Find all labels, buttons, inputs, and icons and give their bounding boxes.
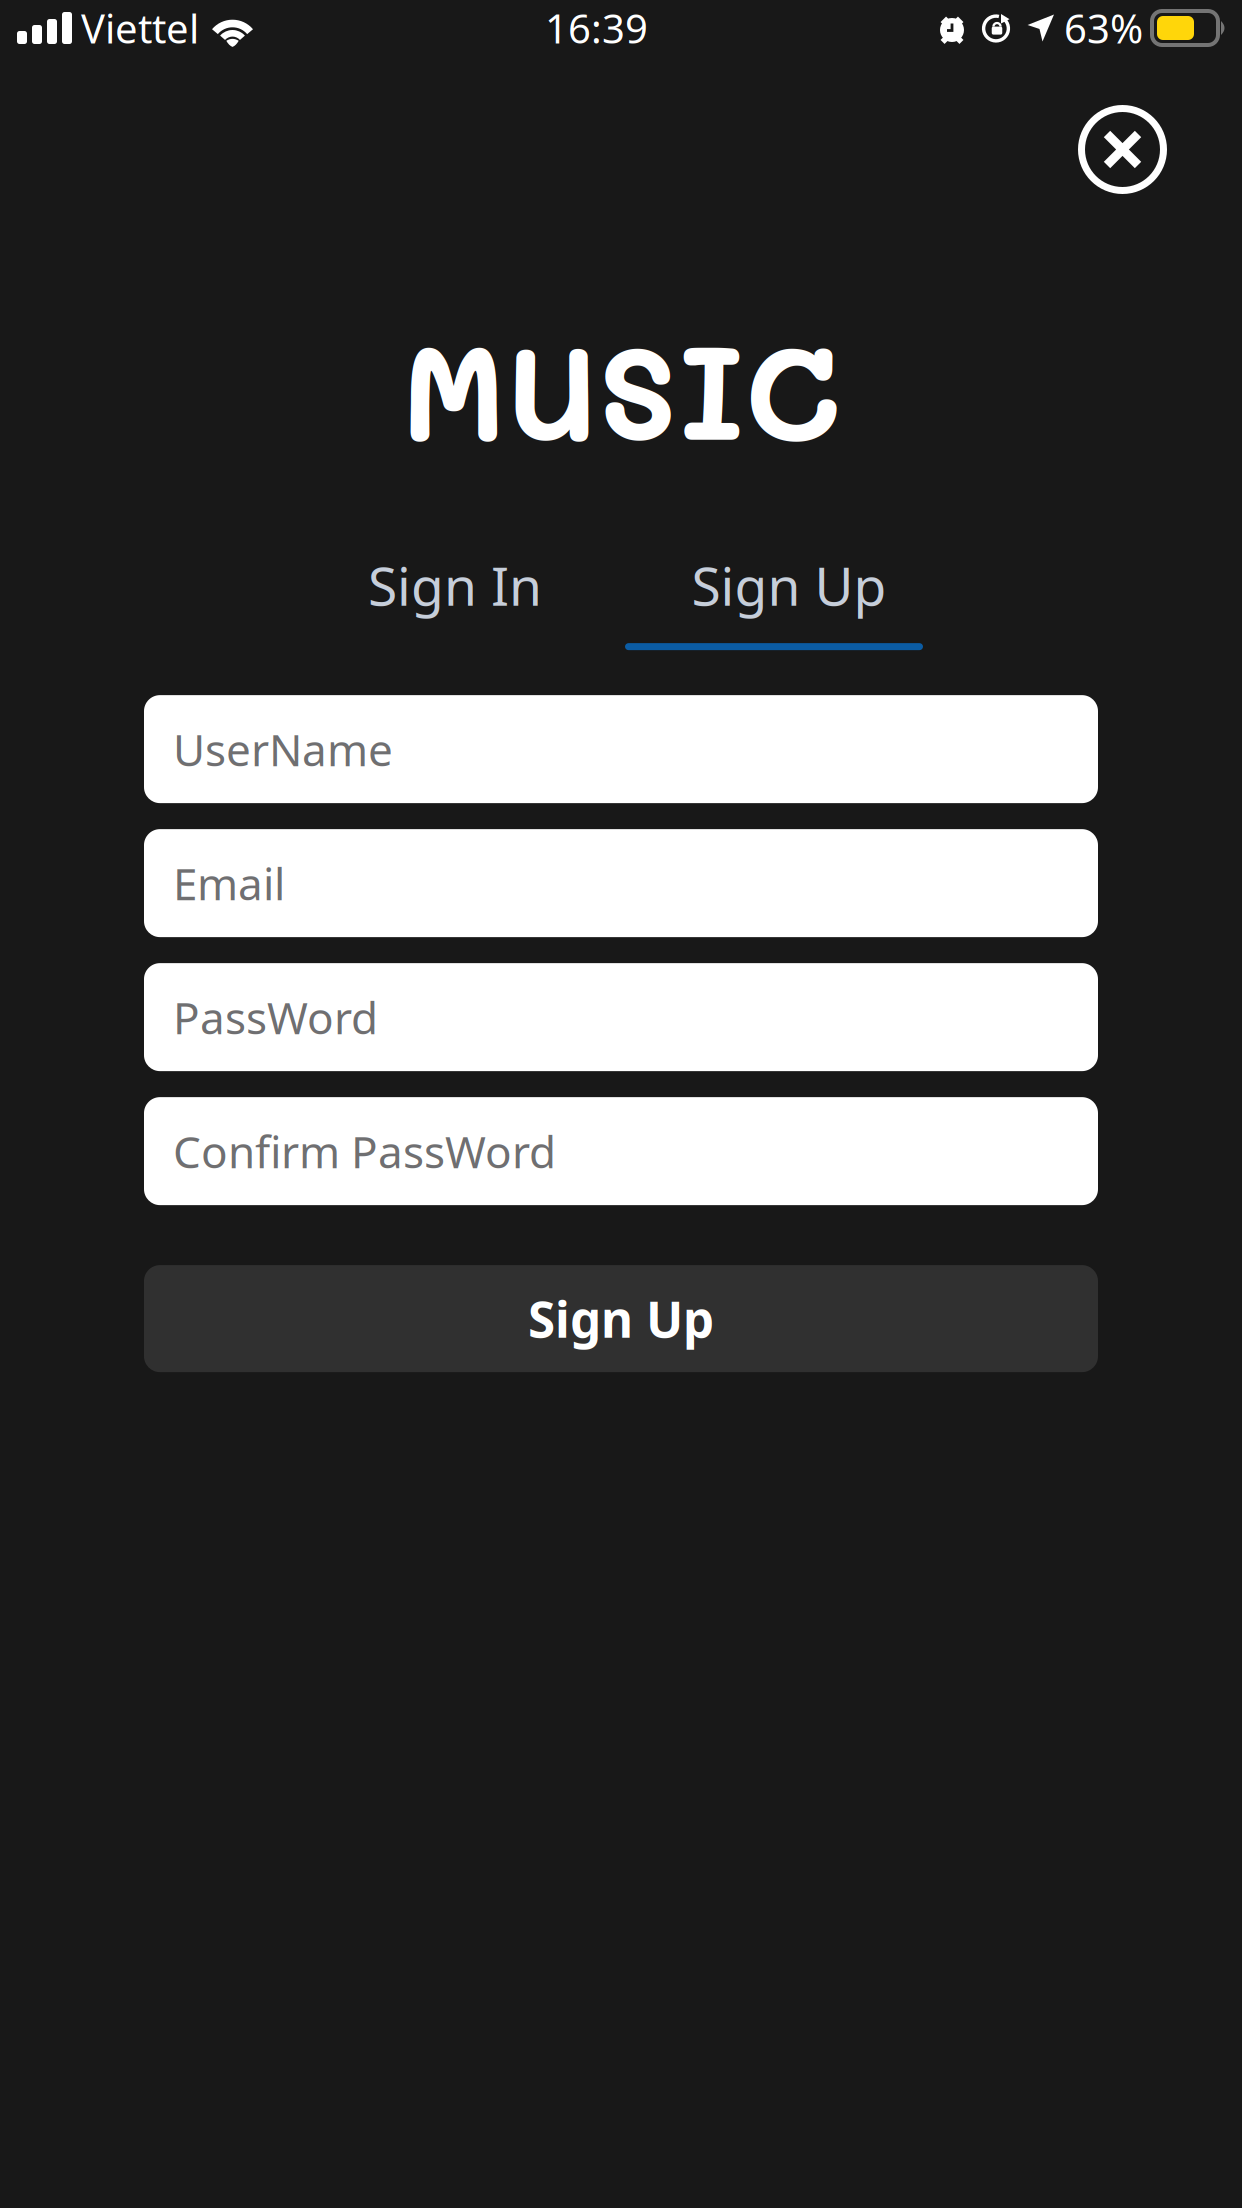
staticText: Sign In: [368, 550, 542, 620]
button[interactable]: Sign Up: [622, 545, 956, 650]
staticText: MUSIC: [401, 305, 840, 473]
button[interactable]: Close: [1078, 105, 1167, 194]
staticText: Sign Up: [528, 1286, 714, 1351]
staticText: Viettel: [81, 1, 199, 54]
button[interactable]: Sign Up: [144, 1265, 1098, 1372]
button[interactable]: Email: [144, 829, 1098, 937]
staticText: Sign Up: [691, 550, 886, 620]
button[interactable]: Confirm PassWord: [144, 1097, 1098, 1205]
button[interactable]: UserName: [144, 695, 1098, 803]
staticText: Confirm PassWord: [173, 1122, 556, 1180]
staticText: UserName: [173, 720, 393, 778]
button[interactable]: PassWord: [144, 963, 1098, 1071]
staticText: 16:39: [545, 1, 648, 54]
staticText: PassWord: [173, 988, 378, 1046]
button[interactable]: Sign In: [288, 545, 622, 650]
staticText: Email: [173, 854, 285, 912]
staticText: 63%: [1064, 1, 1143, 54]
